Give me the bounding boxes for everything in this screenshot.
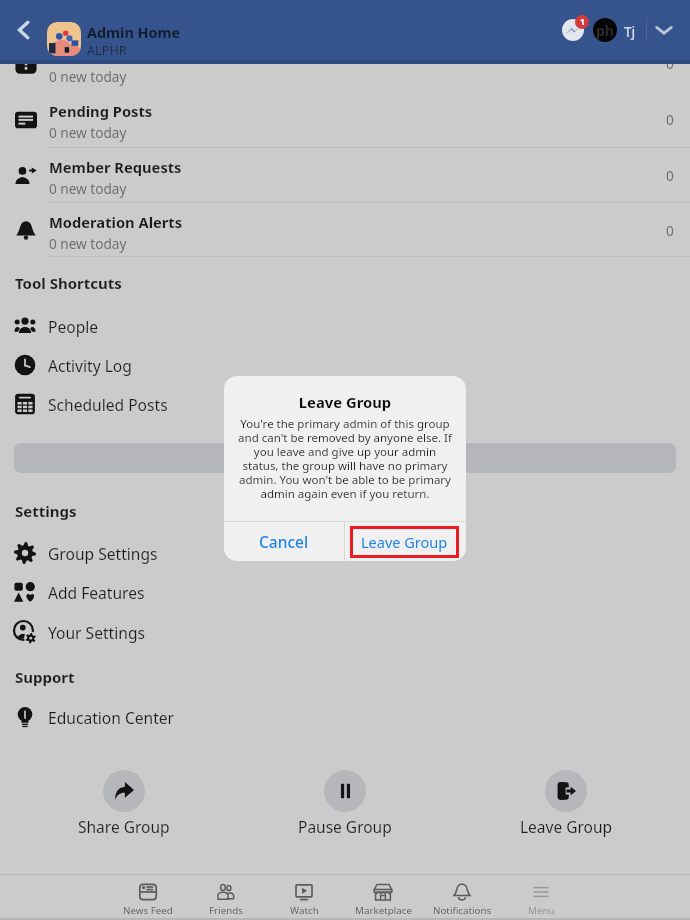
staticText: 0 (666, 110, 674, 129)
button[interactable]: Admin Home (87, 0, 181, 60)
staticText: Watch (290, 904, 319, 917)
staticText: ALPHR (87, 41, 127, 58)
button[interactable]: Watch (265, 882, 343, 917)
button[interactable]: People (0, 308, 690, 344)
staticText: 0 (666, 54, 674, 73)
staticText: Share Group (78, 816, 170, 837)
staticText: Notifications (433, 904, 492, 917)
staticText: Leave Group (361, 532, 448, 552)
staticText: You're the primary admin of this group a… (237, 416, 453, 501)
staticText: Pending Posts (49, 101, 153, 121)
staticText: Marketplace (355, 904, 412, 917)
staticText: Cancel (259, 531, 309, 552)
button[interactable]: More options (652, 11, 676, 49)
staticText: People (48, 316, 99, 337)
button[interactable]: Share Group (69, 770, 179, 837)
staticText: Education Center (48, 707, 175, 728)
button[interactable]: Add Features (0, 574, 690, 610)
button[interactable]: Your Settings (0, 614, 690, 650)
button[interactable]: Member Requests (0, 147, 690, 202)
button[interactable]: Friends (187, 882, 265, 917)
staticText: Member Requests (49, 157, 182, 177)
button[interactable]: Scheduled Posts (0, 386, 690, 422)
button[interactable]: Leave Group (345, 522, 466, 561)
button[interactable]: Marketplace (344, 882, 422, 917)
staticText: Pause Group (298, 816, 392, 837)
button[interactable]: Activity Log (0, 347, 690, 383)
button[interactable]: Back (0, 0, 47, 60)
button[interactable] (47, 22, 81, 56)
staticText: Add Features (48, 582, 145, 603)
staticText: News Feed (123, 904, 173, 917)
staticText: Tj (624, 23, 636, 41)
staticText: Reported Content (49, 45, 180, 65)
button[interactable]: Moderation Alerts (0, 202, 690, 257)
button[interactable]: Menu (502, 882, 580, 917)
button[interactable]: Messenger (552, 11, 594, 49)
button[interactable] (14, 443, 676, 473)
staticText: Scheduled Posts (48, 394, 168, 415)
button[interactable]: Pause Group (290, 770, 400, 837)
button[interactable]: Cancel (224, 522, 344, 561)
button[interactable]: Notifications (423, 882, 501, 917)
staticText: Tool Shortcuts (15, 273, 122, 293)
staticText: 0 new today (49, 179, 127, 198)
button[interactable]: Pending Posts (0, 91, 690, 146)
staticText: 0 new today (49, 123, 127, 142)
staticText: Support (15, 667, 75, 687)
staticText: 1 (580, 16, 585, 28)
button[interactable]: Reported Content (0, 35, 690, 90)
button[interactable]: Education Center (0, 699, 690, 735)
button[interactable]: Profile (593, 18, 617, 42)
staticText: Activity Log (48, 355, 132, 376)
button[interactable]: Leave Group (511, 770, 621, 837)
staticText: ph (596, 21, 614, 40)
staticText: 0 (666, 221, 674, 240)
staticText: Admin Home (87, 23, 181, 43)
staticText: Moderation Alerts (49, 212, 183, 232)
staticText: 0 (666, 166, 674, 185)
staticText: 0 new today (49, 67, 127, 86)
staticText: Friends (209, 904, 243, 917)
staticText: Leave Group (224, 392, 466, 412)
staticText: Your Settings (48, 622, 145, 643)
staticText: Menu (528, 904, 555, 917)
button[interactable]: News Feed (109, 882, 187, 917)
button[interactable]: Group Settings (0, 535, 690, 571)
staticText: Group Settings (48, 543, 158, 564)
staticText: Settings (15, 501, 77, 521)
staticText: Leave Group (520, 816, 613, 837)
staticText: 0 new today (49, 234, 127, 253)
